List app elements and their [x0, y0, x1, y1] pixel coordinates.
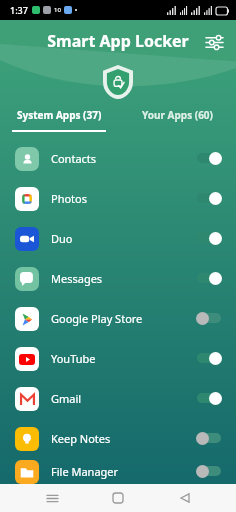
- staticText: Your Apps (60): [142, 108, 213, 122]
- button[interactable]: Duo: [0, 218, 236, 258]
- button[interactable]: Lock toggle: [196, 150, 222, 166]
- staticText: Photos: [51, 191, 196, 206]
- staticText: 10: [54, 6, 61, 14]
- button[interactable]: Lock toggle: [196, 190, 222, 206]
- button[interactable]: Lock toggle: [196, 310, 222, 326]
- staticText: File Manager: [51, 464, 196, 479]
- button[interactable]: Lock toggle: [196, 463, 222, 479]
- button[interactable]: Google Play Store: [0, 298, 236, 338]
- staticText: Contacts: [51, 151, 196, 166]
- button[interactable]: Your Apps (60): [118, 100, 236, 130]
- staticText: Keep Notes: [51, 431, 196, 446]
- button[interactable]: Contacts: [0, 138, 236, 178]
- staticText: Gmail: [51, 391, 196, 406]
- button[interactable]: YouTube: [0, 338, 236, 378]
- button[interactable]: Keep Notes: [0, 418, 236, 458]
- staticText: System Apps (37): [17, 108, 102, 122]
- staticText: Duo: [51, 231, 196, 246]
- staticText: Google Play Store: [51, 311, 196, 326]
- button[interactable]: Recents: [37, 484, 67, 512]
- button[interactable]: Messages: [0, 258, 236, 298]
- button[interactable]: Lock toggle: [196, 350, 222, 366]
- button[interactable]: Photos: [0, 178, 236, 218]
- button[interactable]: Lock toggle: [196, 430, 222, 446]
- staticText: 1:37: [10, 4, 28, 16]
- staticText: YouTube: [51, 351, 196, 366]
- button[interactable]: Lock toggle: [196, 230, 222, 246]
- button[interactable]: Gmail: [0, 378, 236, 418]
- staticText: Smart App Locker: [47, 30, 189, 52]
- staticText: Messages: [51, 271, 196, 286]
- button[interactable]: Lock toggle: [196, 390, 222, 406]
- button[interactable]: System Apps (37): [0, 100, 118, 130]
- button[interactable]: Lock toggle: [196, 270, 222, 286]
- button[interactable]: File Manager: [0, 458, 236, 484]
- button[interactable]: Home: [103, 484, 133, 512]
- button[interactable]: Back: [170, 484, 200, 512]
- button[interactable]: Settings: [200, 28, 228, 56]
